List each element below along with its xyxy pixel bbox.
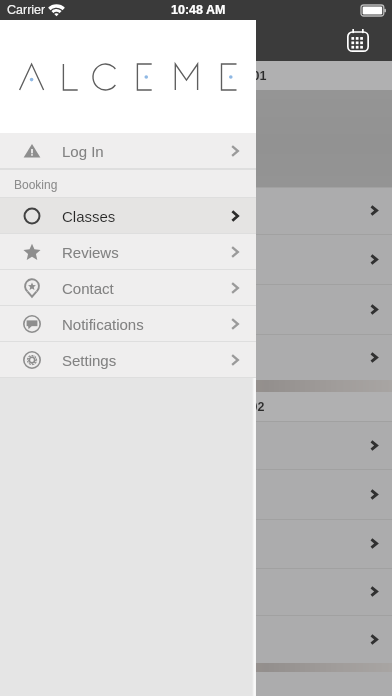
- button[interactable]: Notifications: [0, 306, 256, 342]
- button[interactable]: Calendar: [347, 29, 369, 52]
- button[interactable]: [0, 334, 392, 380]
- button[interactable]: [0, 469, 392, 519]
- staticText: Thu, Mar 02: [195, 400, 265, 414]
- button[interactable]: [0, 187, 392, 234]
- button[interactable]: [0, 568, 392, 615]
- button[interactable]: [0, 284, 392, 334]
- staticText: Booking: [14, 178, 58, 191]
- button[interactable]: [0, 234, 392, 284]
- button[interactable]: Settings: [0, 342, 256, 378]
- staticText: 10:48 AM: [171, 3, 226, 17]
- button[interactable]: Reviews: [0, 234, 256, 270]
- button[interactable]: [0, 519, 392, 568]
- staticText: Notifications: [62, 316, 144, 333]
- button[interactable]: Log In: [0, 133, 256, 169]
- staticText: Classes: [62, 208, 116, 225]
- staticText: Thu, Mar 01: [197, 69, 267, 83]
- button[interactable]: Classes: [0, 198, 256, 234]
- staticText: Reviews: [62, 244, 119, 261]
- button[interactable]: [0, 615, 392, 663]
- staticText: Contact: [62, 280, 114, 297]
- button[interactable]: [0, 421, 392, 469]
- staticText: Settings: [62, 352, 117, 369]
- staticText: Carrier: [7, 3, 46, 17]
- staticText: Log In: [62, 143, 104, 160]
- button[interactable]: Contact: [0, 270, 256, 306]
